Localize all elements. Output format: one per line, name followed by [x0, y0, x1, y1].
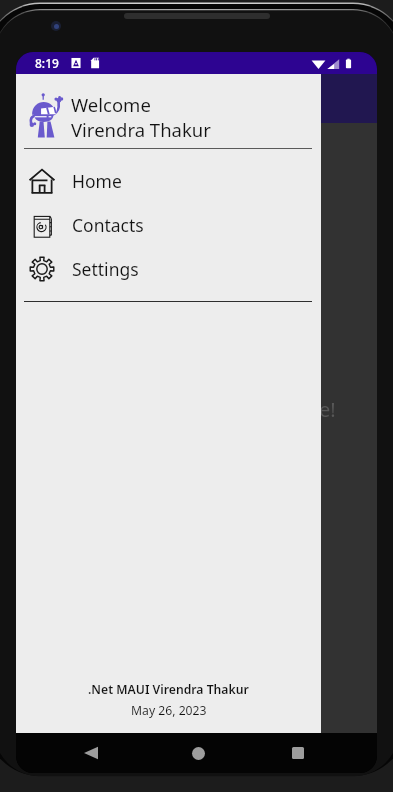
button[interactable]: Back — [73, 735, 109, 771]
staticText: Settings — [72, 257, 139, 281]
staticText: .Net MAUI Virendra Thakur — [88, 681, 249, 698]
staticText: 8:19 — [35, 55, 59, 71]
staticText: Virendra Thakur — [71, 117, 211, 142]
staticText: May 26, 2023 — [131, 702, 207, 719]
staticText: Welcome — [71, 92, 151, 117]
button[interactable]: Home — [180, 735, 216, 771]
staticText: Contacts — [72, 213, 144, 237]
staticText: Welcome! — [244, 396, 336, 423]
button[interactable]: Home — [16, 159, 321, 203]
button[interactable]: Settings — [16, 247, 321, 291]
button[interactable]: Recent apps — [280, 735, 316, 771]
staticText: Home — [72, 169, 122, 193]
button[interactable]: Contacts — [16, 203, 321, 247]
